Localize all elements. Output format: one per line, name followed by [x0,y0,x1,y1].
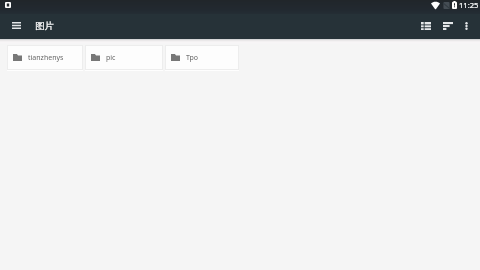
staticText: 图片 [35,20,54,32]
staticText: tianzhenys [28,53,64,63]
staticText: 11:25 [459,0,479,10]
button[interactable]: Switch view mode [415,14,437,39]
button[interactable]: Tpo [165,45,239,70]
button[interactable]: pic [85,45,163,70]
staticText: Tpo [186,53,199,63]
staticText: pic [106,53,116,63]
button[interactable]: More options [453,14,480,39]
button[interactable]: Sort [437,14,459,39]
button[interactable]: Open navigation drawer [0,14,33,39]
button[interactable]: tianzhenys [7,45,83,70]
